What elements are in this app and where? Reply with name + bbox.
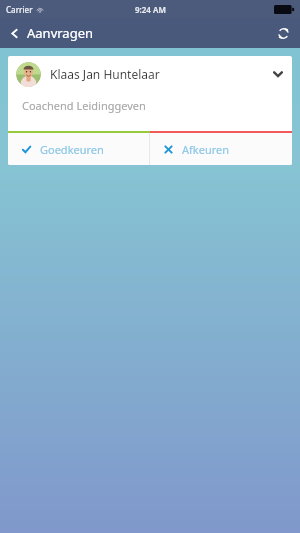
button[interactable]: Afkeuren	[150, 133, 292, 165]
staticText: Afkeuren	[182, 142, 230, 157]
button[interactable]: Refresh	[267, 18, 300, 48]
staticText: Goedkeuren	[40, 142, 104, 157]
staticText: Carrier	[6, 4, 33, 15]
button[interactable]: Aanvragen	[0, 18, 102, 48]
other: Expand	[272, 68, 284, 80]
staticText: Aanvragen	[27, 24, 94, 42]
staticText: Coachend Leidinggeven	[22, 98, 146, 113]
button[interactable]: Goedkeuren	[8, 133, 149, 165]
staticText: Klaas Jan Huntelaar	[50, 66, 272, 82]
staticText: 9:24 AM	[135, 4, 166, 15]
button[interactable]: Klaas Jan Huntelaar	[8, 56, 292, 92]
